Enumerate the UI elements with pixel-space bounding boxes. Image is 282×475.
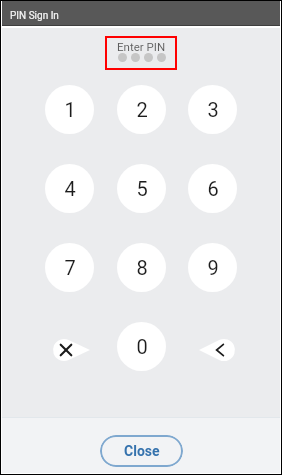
staticText: 6 bbox=[207, 177, 219, 200]
staticText: 2 bbox=[136, 98, 148, 121]
staticText: 8 bbox=[136, 256, 148, 279]
button[interactable]: 4 bbox=[45, 164, 94, 213]
button[interactable]: 5 bbox=[117, 164, 166, 213]
button[interactable]: 8 bbox=[117, 243, 166, 292]
staticText: 0 bbox=[136, 335, 148, 358]
button[interactable]: 0 bbox=[117, 322, 166, 371]
button[interactable]: 9 bbox=[188, 243, 237, 292]
button[interactable]: Backspace bbox=[199, 339, 235, 361]
staticText: Enter PIN bbox=[117, 40, 166, 53]
button[interactable]: 2 bbox=[117, 85, 166, 134]
staticText: 1 bbox=[64, 98, 76, 121]
button[interactable]: 1 bbox=[45, 85, 94, 134]
staticText: PIN Sign In bbox=[10, 10, 59, 22]
staticText: 7 bbox=[64, 256, 76, 279]
button[interactable]: Clear bbox=[53, 339, 90, 361]
staticText: 5 bbox=[136, 177, 148, 200]
staticText: 3 bbox=[207, 98, 219, 121]
staticText: 9 bbox=[207, 256, 219, 279]
button[interactable]: 6 bbox=[188, 164, 237, 213]
staticText: Close bbox=[124, 443, 160, 459]
button[interactable]: 3 bbox=[188, 85, 237, 134]
button[interactable]: 7 bbox=[45, 243, 94, 292]
staticText: 4 bbox=[64, 177, 76, 200]
button[interactable]: Close bbox=[100, 435, 183, 467]
